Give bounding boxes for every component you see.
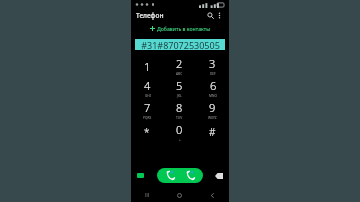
button[interactable]: #: [196, 121, 229, 143]
button[interactable]: Backspace: [215, 173, 223, 179]
staticText: GHI: [145, 94, 151, 98]
button[interactable]: *: [131, 121, 163, 143]
staticText: 7: [144, 100, 151, 115]
staticText: 4: [144, 78, 151, 93]
button[interactable]: 9: [196, 99, 229, 121]
staticText: JKL: [177, 94, 182, 98]
staticText: 8: [176, 100, 183, 115]
button[interactable]: Recents: [131, 188, 163, 202]
staticText: 6: [210, 78, 217, 93]
staticText: TUV: [176, 116, 183, 120]
staticText: #: [209, 125, 216, 139]
button[interactable]: 8: [163, 99, 196, 121]
button[interactable]: Добавить в контакты: [131, 21, 229, 35]
staticText: ABC: [176, 72, 183, 76]
staticText: 2: [176, 56, 183, 71]
button[interactable]: 7: [131, 99, 163, 121]
button[interactable]: 2: [163, 55, 196, 77]
button[interactable]: Search: [205, 10, 215, 20]
staticText: WXYZ: [208, 116, 217, 120]
staticText: 1: [144, 59, 151, 74]
button[interactable]: 3: [196, 55, 229, 77]
staticText: 3: [209, 56, 216, 71]
button[interactable]: 6: [196, 77, 229, 99]
staticText: *: [144, 125, 150, 139]
button[interactable]: #31#87072530505: [135, 39, 225, 50]
staticText: +: [179, 138, 181, 142]
staticText: DEF: [210, 72, 216, 76]
staticText: #31#87072530505: [141, 39, 220, 50]
button[interactable]: Back: [196, 188, 229, 202]
staticText: MNO: [209, 94, 217, 98]
staticText: 5: [176, 78, 183, 93]
button[interactable]: Home: [163, 188, 196, 202]
button[interactable]: 1: [131, 55, 163, 77]
staticText: 0: [176, 122, 183, 137]
button[interactable]: 4: [131, 77, 163, 99]
staticText: Телефон: [136, 11, 164, 20]
button[interactable]: Call with SIM 2: [182, 168, 198, 183]
button[interactable]: 5: [163, 77, 196, 99]
staticText: PQRS: [143, 116, 152, 120]
staticText: 9: [209, 100, 216, 115]
button[interactable]: 0: [163, 121, 196, 143]
button[interactable]: More options: [215, 11, 224, 20]
button[interactable]: Video call: [137, 173, 144, 178]
button[interactable]: Call with SIM 1: [162, 168, 178, 183]
staticText: Добавить в контакты: [157, 25, 211, 32]
